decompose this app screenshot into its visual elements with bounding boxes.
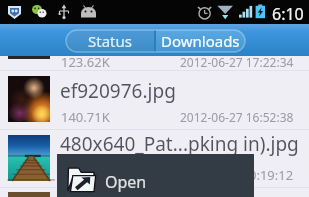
staticText: 2012-06-27 16:52:38 [180,109,294,125]
staticText: ef920976.jpg [60,78,176,104]
staticText: Open [105,171,147,193]
staticText: 0:19:12 [249,166,294,184]
staticText: 140.71K [61,108,110,126]
staticText: 480x640_Pat...pking in).jpg [60,131,299,157]
button[interactable]: Status [66,30,154,52]
button[interactable]: Open [57,154,254,197]
button[interactable]: Downloads [156,30,245,52]
staticText: 123.62K [61,53,110,71]
button[interactable]: 480x640_Pat...pking in).jpg [0,130,309,188]
staticText: Downloads [161,31,240,51]
staticText: 2012-06-27 17:22:34 [180,54,294,70]
button[interactable]: ef920976.jpg [0,71,309,129]
staticText: 6:10 [272,3,304,25]
staticText: Status [88,31,132,51]
